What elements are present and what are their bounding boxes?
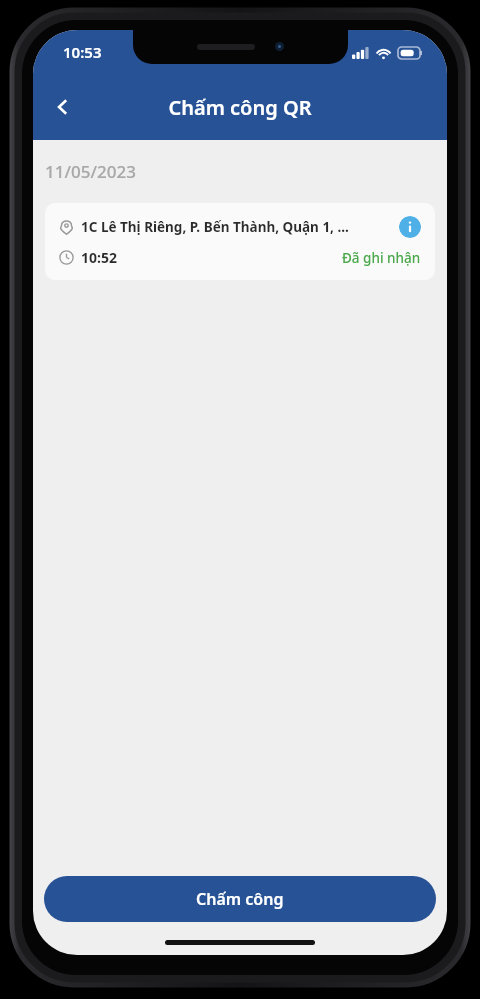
button[interactable]: 1C Lê Thị Riêng, P. Bến Thành, Quận 1, .… bbox=[45, 203, 435, 280]
staticText: Chấm công QR bbox=[168, 94, 312, 121]
button[interactable]: Information bbox=[399, 216, 421, 238]
button[interactable]: Chấm công bbox=[44, 876, 436, 922]
staticText: 11/05/2023 bbox=[45, 160, 136, 183]
staticText: 1C Lê Thị Riêng, P. Bến Thành, Quận 1, .… bbox=[81, 218, 393, 236]
staticText: 10:52 bbox=[81, 248, 117, 267]
staticText: Đã ghi nhận bbox=[342, 249, 421, 267]
button[interactable]: Back bbox=[41, 85, 85, 129]
staticText: Chấm công bbox=[196, 888, 284, 910]
staticText: 10:53 bbox=[63, 42, 102, 62]
